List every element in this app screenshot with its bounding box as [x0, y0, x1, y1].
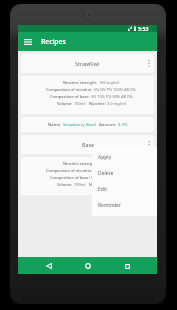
button[interactable]: Home: [80, 258, 96, 274]
button[interactable]: Nicotine strength:: [21, 76, 154, 114]
staticText: Composition of nicotine:: [46, 168, 94, 173]
staticText: Composition of base:: [50, 94, 91, 99]
staticText: 5:53: [138, 25, 149, 32]
button[interactable]: Reminder: [98, 197, 157, 213]
button[interactable]: Name:: [21, 117, 154, 132]
staticText: VG 0% PG 100% AB 0%: [94, 168, 136, 173]
staticText: VG 0% PG 100% AB 0%: [94, 87, 136, 92]
staticText: Amount:: [99, 122, 118, 128]
button[interactable]: Edit: [98, 181, 157, 197]
button[interactable]: Base: [21, 135, 154, 154]
staticText: Name:: [48, 122, 63, 128]
staticText: Reminder: [98, 202, 121, 209]
staticText: Nicotine:: [89, 101, 107, 106]
button[interactable]: Recent apps: [119, 258, 135, 274]
staticText: Apply: [98, 154, 112, 161]
button[interactable]: More options: [143, 135, 154, 154]
button[interactable]: Open navigation menu: [18, 32, 38, 51]
button[interactable]: Nicotine strength:: [21, 157, 154, 195]
staticText: Base: [82, 141, 94, 148]
staticText: 100ml: [74, 101, 86, 106]
staticText: VG 70% PG 38% AB 0%: [91, 94, 133, 99]
staticText: Strawberry (kiwi): [63, 122, 96, 128]
staticText: Composition of base:: [50, 175, 91, 180]
staticText: Delete: [98, 170, 114, 177]
staticText: 100 mg/ml: [99, 80, 120, 85]
staticText: Nicotine:: [89, 182, 107, 187]
button[interactable]: StrawKiwi: [21, 54, 154, 73]
staticText: Nicotine strength:: [63, 161, 99, 166]
staticText: VG 70% PG 38% AB 0%: [91, 175, 133, 180]
staticText: 100ml: [74, 182, 86, 187]
staticText: Nicotine strength:: [63, 80, 99, 85]
button[interactable]: More options: [143, 54, 154, 73]
button[interactable]: Apply: [98, 149, 157, 165]
staticText: 2.3%: [118, 122, 128, 128]
staticText: Edit: [98, 186, 107, 193]
staticText: Volume:: [57, 101, 74, 106]
staticText: Volume:: [57, 182, 74, 187]
button[interactable]: Back: [41, 258, 57, 274]
button[interactable]: Delete: [98, 165, 157, 181]
staticText: StrawKiwi: [75, 60, 100, 67]
staticText: Composition of nicotine:: [46, 87, 94, 92]
staticText: Recipes: [41, 37, 66, 46]
staticText: 3.0 mg/ml: [107, 101, 126, 106]
